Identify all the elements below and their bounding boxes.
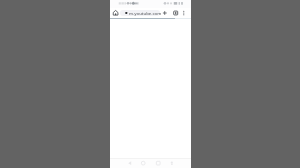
button[interactable]: More options bbox=[180, 9, 188, 17]
button[interactable]: New tab bbox=[160, 9, 169, 18]
button[interactable]: Home bbox=[111, 9, 120, 18]
button[interactable]: Home bbox=[138, 159, 147, 168]
button[interactable]: Back bbox=[125, 159, 134, 168]
button[interactable]: Recents bbox=[153, 159, 162, 168]
button[interactable]: m.youtube.com bbox=[120, 10, 160, 16]
staticText: m.youtube.com bbox=[129, 10, 162, 16]
button[interactable]: Screenshot bbox=[167, 159, 176, 168]
button[interactable]: Tabs bbox=[171, 9, 180, 18]
